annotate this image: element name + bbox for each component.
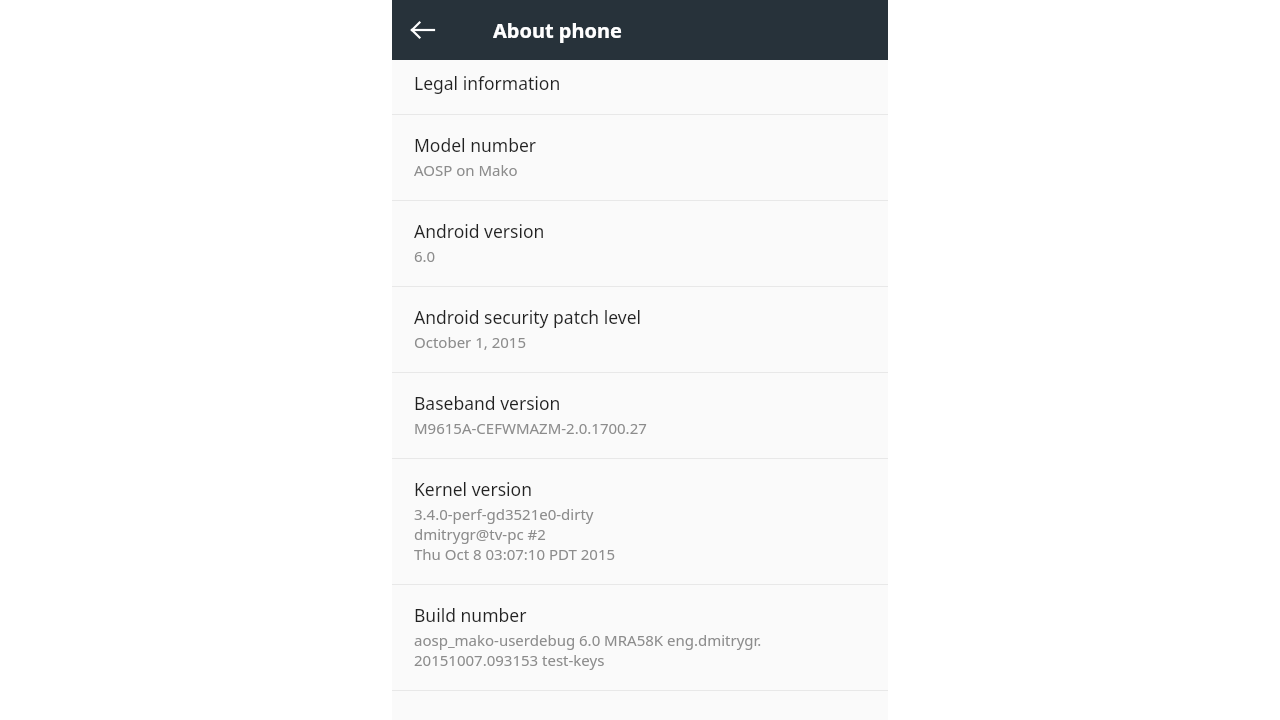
staticText: Model number xyxy=(414,133,537,157)
button[interactable]: Android version xyxy=(392,201,888,286)
button[interactable]: Navigate up xyxy=(399,6,447,54)
staticText: 20151007.093153 test-keys xyxy=(414,650,605,670)
staticText: Thu Oct 8 03:07:10 PDT 2015 xyxy=(414,544,616,564)
staticText: dmitrygr@tv-pc #2 xyxy=(414,524,546,544)
staticText: 3.4.0-perf-gd3521e0-dirty xyxy=(414,504,594,524)
button[interactable]: Build number xyxy=(392,585,888,690)
button[interactable]: Android security patch level xyxy=(392,287,888,372)
button[interactable]: Kernel version xyxy=(392,459,888,584)
staticText: About phone xyxy=(493,17,622,44)
staticText: Android security patch level xyxy=(414,305,642,329)
staticText: Build number xyxy=(414,603,527,627)
staticText: Kernel version xyxy=(414,477,532,501)
staticText: 6.0 xyxy=(414,246,436,266)
staticText: M9615A-CEFWMAZM-2.0.1700.27 xyxy=(414,418,647,438)
staticText: AOSP on Mako xyxy=(414,160,518,180)
button[interactable]: Model number xyxy=(392,115,888,200)
staticText: Legal information xyxy=(414,71,561,95)
button[interactable]: Baseband version xyxy=(392,373,888,458)
button[interactable]: Legal information xyxy=(392,60,888,114)
staticText: Baseband version xyxy=(414,391,561,415)
staticText: Android version xyxy=(414,219,545,243)
staticText: aosp_mako-userdebug 6.0 MRA58K eng.dmitr… xyxy=(414,630,762,650)
staticText: October 1, 2015 xyxy=(414,332,527,352)
